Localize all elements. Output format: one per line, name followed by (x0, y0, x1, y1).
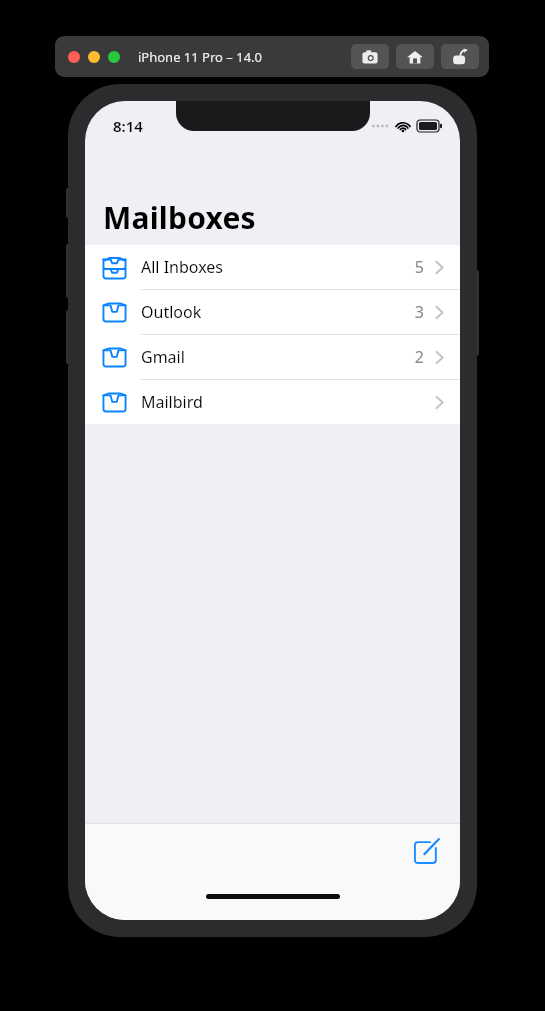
staticText: Mailboxes (103, 197, 256, 238)
staticText: Mailbird (141, 391, 203, 413)
staticText: All Inboxes (141, 256, 223, 278)
staticText: 3 (414, 301, 424, 323)
button[interactable]: Gmail (85, 335, 460, 380)
button[interactable]: Mailbird (85, 380, 460, 424)
button[interactable]: Screenshot (351, 44, 389, 69)
staticText: Gmail (141, 346, 185, 368)
staticText: 8:14 (113, 116, 143, 136)
button[interactable]: Share (441, 44, 479, 69)
button[interactable] (68, 51, 80, 63)
button[interactable]: All Inboxes (85, 245, 460, 290)
button[interactable] (108, 51, 120, 63)
staticText: iPhone 11 Pro – 14.0 (138, 48, 263, 66)
staticText: 2 (414, 346, 424, 368)
staticText: 5 (414, 256, 424, 278)
button[interactable]: Compose new message (410, 834, 444, 868)
button[interactable] (88, 51, 100, 63)
button[interactable]: Home (396, 44, 434, 69)
button[interactable]: Outlook (85, 290, 460, 335)
staticText: Outlook (141, 301, 202, 323)
